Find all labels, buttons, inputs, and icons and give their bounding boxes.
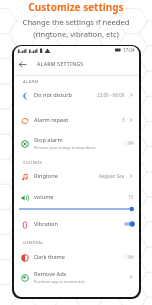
button[interactable]: volume [14, 188, 139, 206]
staticText: Purchase app to remove ads [34, 279, 85, 284]
button[interactable]: Alarm repeat [14, 111, 139, 129]
staticText: Change the settings if needed (ringtone,… [0, 17, 152, 39]
button[interactable]: Dark theme [14, 248, 139, 266]
staticText: Do not disturb [34, 91, 73, 99]
button[interactable]: Turn on [124, 253, 134, 261]
staticText: Dark theme [34, 253, 65, 261]
button[interactable]: Vibration [14, 215, 139, 233]
staticText: ALARM [23, 79, 39, 85]
staticText: 15 [128, 194, 134, 200]
button[interactable]: Remove Ads [14, 268, 139, 286]
staticText: 17:04 [123, 47, 135, 53]
staticText: Vibration [34, 220, 58, 228]
staticText: GENERAL [23, 240, 44, 246]
staticText: Alarm repeat [34, 116, 69, 124]
button[interactable]: Ringtone [14, 167, 139, 185]
staticText: Ringtone [34, 172, 58, 180]
button[interactable]: Turn off [124, 220, 134, 228]
button[interactable]: Volume slider [19, 205, 134, 213]
staticText: ALARM SETTINGS [37, 61, 84, 68]
staticText: Aegean Sea [99, 173, 125, 179]
staticText: Remove Ads [34, 270, 67, 278]
staticText: Customize settings [0, 0, 152, 14]
button[interactable]: Turn on [124, 139, 134, 147]
staticText: SOUNDS [23, 160, 43, 166]
staticText: 22:00 - 08:00 [97, 92, 125, 98]
button[interactable]: Stop alarm [14, 134, 139, 152]
staticText: 3 [122, 117, 125, 123]
staticText: Stop alarm [34, 136, 63, 144]
button[interactable]: Back [14, 56, 31, 72]
staticText: volume [34, 193, 54, 201]
button[interactable]: Do not disturb [14, 86, 139, 104]
staticText: Remove your charge to stop alarm [34, 145, 96, 150]
